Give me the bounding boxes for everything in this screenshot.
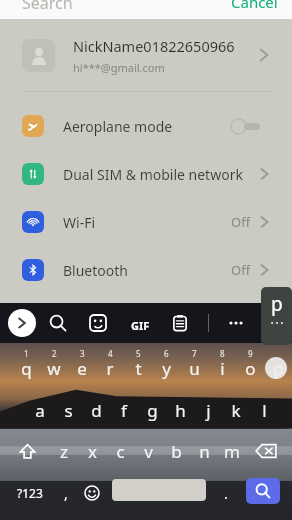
- staticText: x: [88, 440, 97, 463]
- staticText: 9: [248, 348, 253, 359]
- staticText: hi***@gmail.com: [73, 60, 165, 75]
- button[interactable]: NickName01822650966: [0, 19, 292, 91]
- button[interactable]: w: [41, 357, 67, 380]
- staticText: 5: [136, 348, 141, 359]
- staticText: NickName01822650966: [73, 36, 235, 56]
- button[interactable]: Stickers: [84, 309, 112, 337]
- staticText: n: [199, 440, 210, 463]
- staticText: j: [206, 399, 211, 422]
- button[interactable]: ,: [56, 479, 76, 507]
- button[interactable]: r: [97, 357, 123, 380]
- staticText: Off: [231, 261, 251, 279]
- button[interactable]: Wi-Fi: [0, 198, 292, 246]
- staticText: f: [121, 399, 127, 422]
- button[interactable]: Space: [112, 479, 206, 501]
- button[interactable]: x: [79, 440, 105, 463]
- staticText: ,: [64, 484, 68, 503]
- staticText: g: [147, 399, 158, 422]
- button[interactable]: j: [195, 399, 221, 422]
- staticText: y: [162, 357, 171, 380]
- button[interactable]: t: [125, 357, 151, 380]
- button[interactable]: i: [209, 357, 235, 380]
- button[interactable]: Search: [246, 478, 280, 504]
- button[interactable]: e: [69, 357, 95, 380]
- staticText: v: [144, 440, 153, 463]
- button[interactable]: Backspace: [250, 438, 282, 464]
- button[interactable]: GIF: [124, 309, 156, 341]
- button[interactable]: z: [51, 440, 77, 463]
- button[interactable]: o: [237, 357, 263, 380]
- button[interactable]: c: [107, 440, 133, 463]
- staticText: l: [262, 399, 267, 422]
- button[interactable]: a: [27, 399, 53, 422]
- button[interactable]: f: [111, 399, 137, 422]
- staticText: .: [224, 484, 228, 503]
- staticText: Dual SIM & mobile network: [63, 165, 251, 184]
- staticText: p: [273, 357, 284, 380]
- staticText: r: [106, 357, 114, 380]
- staticText: Search: [22, 0, 73, 11]
- button[interactable]: Shift: [12, 438, 42, 464]
- staticText: Wi-Fi: [63, 213, 231, 232]
- button[interactable]: k: [223, 399, 249, 422]
- button[interactable]: u: [181, 357, 207, 380]
- button[interactable]: ?123: [8, 479, 52, 507]
- staticText: 8: [220, 348, 225, 359]
- button[interactable]: n: [191, 440, 217, 463]
- button[interactable]: Dual SIM & mobile network: [0, 150, 292, 198]
- button[interactable]: h: [167, 399, 193, 422]
- staticText: 2: [52, 348, 57, 359]
- staticText: Bluetooth: [63, 261, 231, 280]
- staticText: s: [64, 399, 73, 422]
- button[interactable]: Clipboard: [166, 309, 194, 337]
- staticText: w: [47, 357, 61, 380]
- staticText: q: [21, 357, 32, 380]
- staticText: e: [77, 357, 87, 380]
- staticText: 6: [164, 348, 169, 359]
- staticText: u: [189, 357, 200, 380]
- staticText: 3: [80, 348, 85, 359]
- button[interactable]: Back: [8, 309, 36, 337]
- staticText: a: [35, 399, 45, 422]
- staticText: ?123: [17, 485, 43, 501]
- button[interactable]: s: [55, 399, 81, 422]
- staticText: p: [271, 291, 283, 317]
- staticText: m: [224, 440, 240, 463]
- staticText: 1: [24, 348, 29, 359]
- button[interactable]: d: [83, 399, 109, 422]
- button[interactable]: p: [265, 357, 291, 380]
- button[interactable]: More options: [222, 309, 250, 337]
- staticText: Aeroplane mode: [63, 117, 230, 136]
- button[interactable]: m: [219, 440, 245, 463]
- button[interactable]: b: [163, 440, 189, 463]
- staticText: 7: [192, 348, 197, 359]
- staticText: c: [116, 440, 125, 463]
- staticText: i: [220, 357, 225, 380]
- button[interactable]: g: [139, 399, 165, 422]
- button[interactable]: Search: [44, 309, 72, 337]
- button[interactable]: .: [216, 479, 236, 507]
- staticText: b: [171, 440, 182, 463]
- button[interactable]: y: [153, 357, 179, 380]
- staticText: o: [245, 357, 256, 380]
- button[interactable]: l: [251, 399, 277, 422]
- staticText: z: [60, 440, 68, 463]
- staticText: d: [91, 399, 102, 422]
- staticText: GIF: [131, 318, 150, 333]
- staticText: h: [175, 399, 186, 422]
- button[interactable]: Bluetooth: [0, 246, 292, 294]
- staticText: k: [231, 399, 241, 422]
- staticText: Off: [231, 213, 251, 231]
- button[interactable]: Cancel: [231, 0, 278, 11]
- button[interactable]: q: [13, 357, 39, 380]
- staticText: 4: [108, 348, 113, 359]
- button[interactable]: Emoji: [78, 479, 106, 507]
- button[interactable]: Aeroplane mode: [0, 102, 292, 150]
- button[interactable]: v: [135, 440, 161, 463]
- staticText: t: [135, 357, 142, 380]
